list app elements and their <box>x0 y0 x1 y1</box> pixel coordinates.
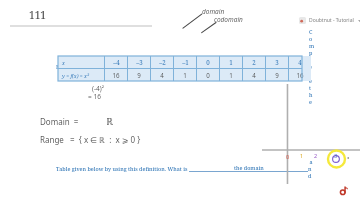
staticText: 16 <box>296 71 304 79</box>
staticText: Example 13 Define the function <box>56 63 140 70</box>
staticText: 0 <box>206 58 210 66</box>
staticText: 4 <box>252 71 256 79</box>
staticText: = 16 <box>88 92 101 101</box>
staticText: ℝ <box>106 114 114 128</box>
staticText: the domain <box>234 164 264 171</box>
staticText: Domain = <box>40 116 79 127</box>
staticText: 3 <box>275 58 279 66</box>
staticText: = <box>177 63 183 70</box>
staticText: 0 <box>206 71 210 79</box>
staticText: –2 <box>159 58 166 66</box>
button[interactable]: App logo <box>337 183 351 197</box>
staticText: y = f(x) = x² <box>62 72 89 79</box>
staticText: 1 <box>183 71 187 79</box>
staticText: 1 <box>229 71 233 79</box>
staticText: 1 <box>229 58 233 66</box>
staticText: 111 <box>29 8 46 22</box>
staticText: f : R → R by y <box>141 63 176 70</box>
staticText: 3 <box>334 152 338 159</box>
staticText: Table given below by using this definiti… <box>56 165 189 172</box>
staticText: 2 <box>252 58 256 66</box>
staticText: 4 <box>160 71 164 79</box>
staticText: x <box>62 59 65 66</box>
staticText: 9 <box>275 71 279 79</box>
button[interactable]: Graph axes <box>262 84 360 184</box>
staticText: 2 <box>314 152 318 159</box>
staticText: 9 <box>137 71 141 79</box>
button[interactable]: Doubtnut - Tutorial <box>296 14 360 27</box>
staticText: 1 <box>300 152 304 159</box>
staticText: Doubtnut - Tutorial <box>309 17 354 24</box>
staticText: –4 <box>113 58 120 66</box>
staticText: domain <box>202 7 225 16</box>
staticText: (-4)² <box>92 84 104 93</box>
staticText: f(x) = x², x ∈ R <box>227 63 264 70</box>
staticText: 16 <box>112 71 120 79</box>
staticText: codomain <box>214 15 243 24</box>
staticText: 0 <box>286 153 290 160</box>
staticText: –1 <box>182 58 189 66</box>
staticText: Range = { x ∈ ℝ : x ⩾ 0 } <box>40 134 141 145</box>
button[interactable]: x <box>58 56 311 81</box>
staticText: –3 <box>136 58 143 66</box>
staticText: 4 <box>298 58 302 66</box>
